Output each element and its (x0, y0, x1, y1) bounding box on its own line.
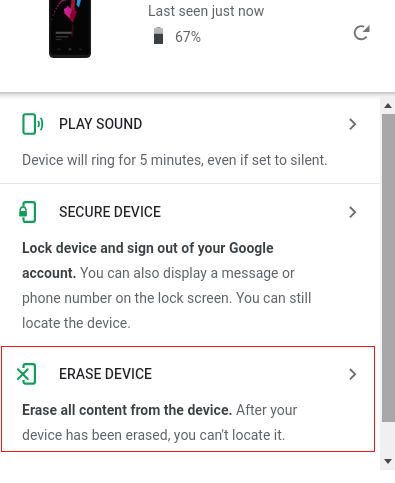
staticText: Device will ring for 5 minutes, even if … (22, 152, 328, 168)
staticText: PLAY SOUND (59, 116, 143, 132)
button[interactable]: Scroll up (380, 97, 395, 114)
button[interactable]: PLAY SOUND (0, 96, 395, 152)
staticText: Lock device and sign out of your Google … (22, 240, 328, 331)
staticText: Last seen just now (148, 3, 265, 19)
button[interactable]: Scroll down (380, 453, 395, 470)
button[interactable]: ERASE DEVICE (0, 346, 395, 402)
staticText: 67% (175, 29, 201, 45)
staticText: Erase all content from the device. After… (22, 402, 328, 443)
staticText: SECURE DEVICE (59, 204, 161, 220)
button[interactable]: Refresh (348, 19, 376, 47)
button[interactable]: SECURE DEVICE (0, 184, 395, 240)
staticText: ERASE DEVICE (59, 366, 152, 382)
